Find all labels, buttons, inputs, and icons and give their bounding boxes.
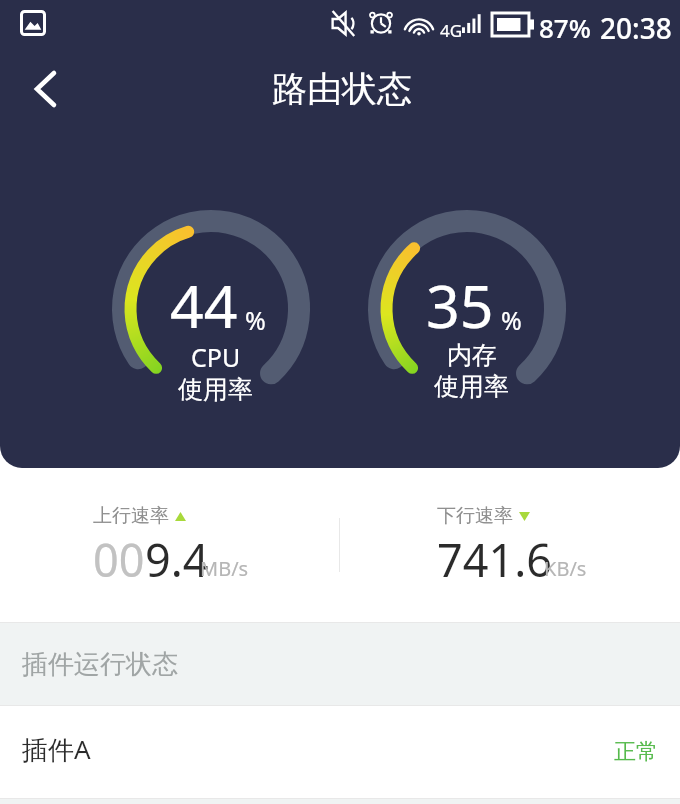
staticText: % — [501, 303, 522, 337]
staticText: % — [245, 303, 266, 337]
staticText: 使用率 — [434, 371, 509, 402]
staticText: 20:38 — [600, 9, 672, 47]
staticText: 正常 — [614, 738, 658, 766]
staticText: 9.4 — [145, 529, 209, 590]
staticText: 内存 — [447, 340, 497, 371]
staticText: 插件运行状态 — [22, 648, 178, 681]
staticText: 上行速率 — [93, 504, 169, 528]
staticText: 44 — [170, 265, 238, 345]
staticText: KB/s — [544, 555, 587, 582]
staticText: 4G — [440, 19, 463, 42]
staticText: 使用率 — [178, 374, 253, 405]
button[interactable]: Back — [10, 54, 80, 124]
staticText: 插件A — [22, 731, 91, 767]
staticText: MB/s — [200, 555, 249, 582]
staticText: CPU — [191, 340, 241, 374]
staticText: 下行速率 — [437, 504, 513, 528]
staticText: 路由状态 — [272, 67, 412, 111]
staticText: 87% — [539, 10, 591, 45]
button[interactable]: 插件A — [0, 706, 680, 798]
staticText: 741.6 — [437, 529, 553, 590]
staticText: 35 — [426, 265, 494, 345]
staticText: 00 — [93, 529, 145, 590]
